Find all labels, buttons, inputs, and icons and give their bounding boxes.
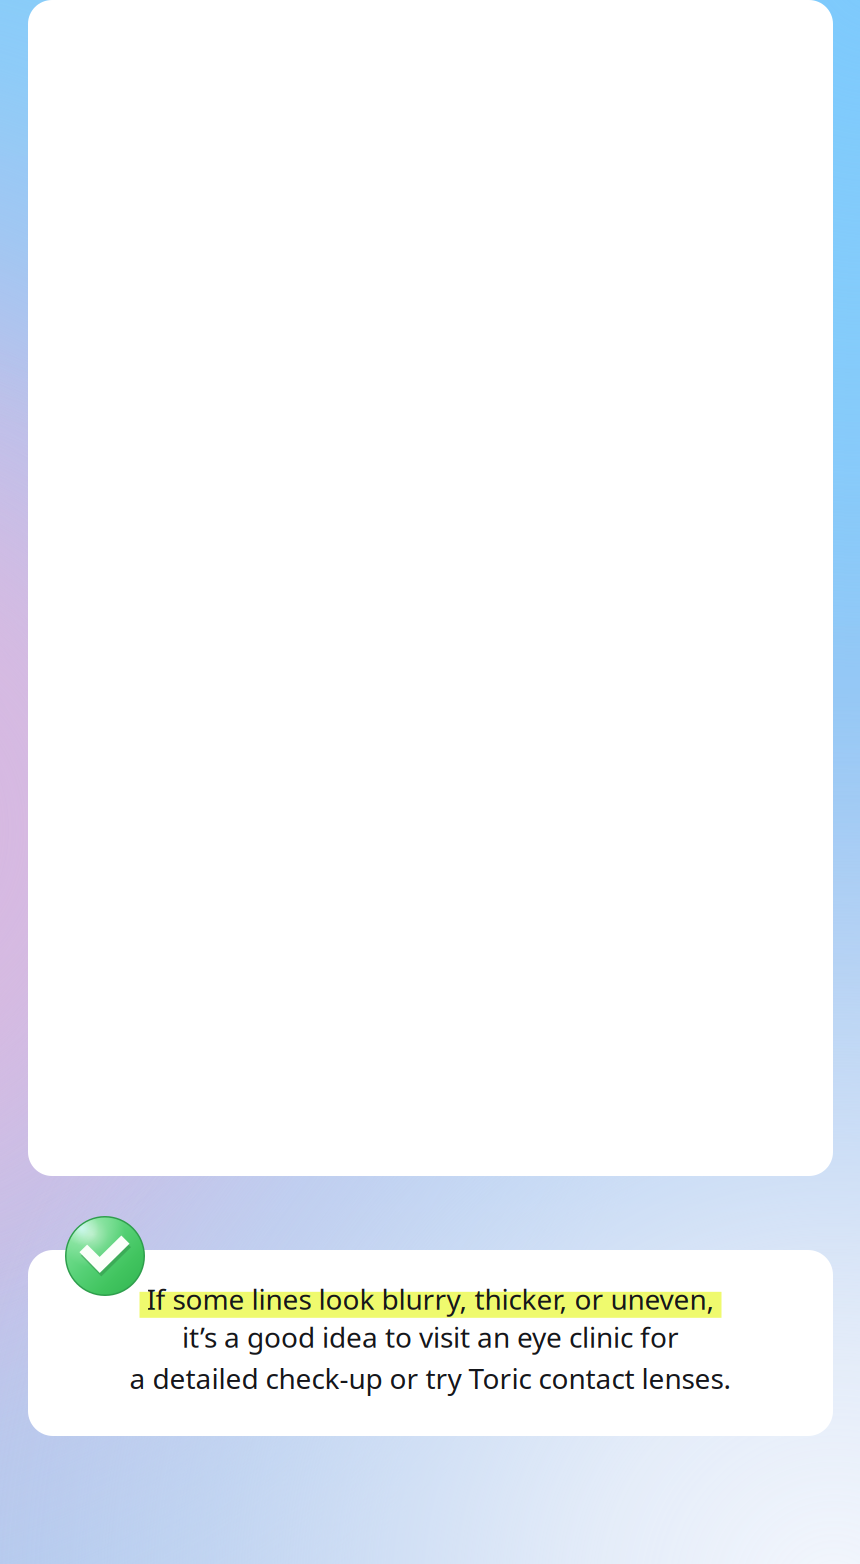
button[interactable]: If some lines look blurry, thicker, or u… [28, 1250, 833, 1436]
staticText: it’s a good idea to visit an eye clinic … [182, 1318, 679, 1355]
staticText: If some lines look blurry, thicker, or u… [146, 1280, 714, 1317]
staticText: a detailed check-up or try Toric contact… [129, 1359, 731, 1397]
